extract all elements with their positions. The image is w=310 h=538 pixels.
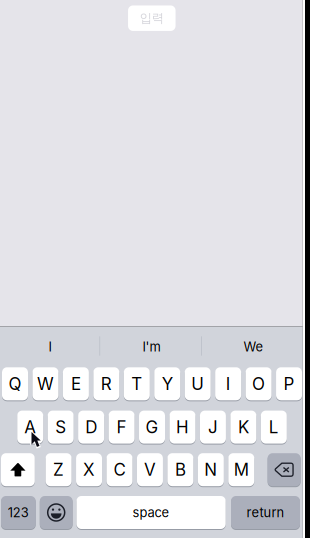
staticText: I [48,339,51,355]
staticText: T [131,374,142,394]
staticText: R [101,374,112,394]
button[interactable]: J [0,0,303,538]
button[interactable]: W [0,0,303,538]
button[interactable]: X [0,0,303,538]
staticText: H [176,417,189,437]
staticText: O [252,374,265,394]
button[interactable]: 123 [0,0,303,538]
button[interactable]: P [0,0,303,538]
staticText: A [24,417,36,437]
button[interactable]: Shift [0,0,303,538]
staticText: L [269,417,279,437]
button[interactable]: O [0,0,303,538]
staticText: 123 [8,505,29,520]
button[interactable]: U [0,0,303,538]
button[interactable]: N [0,0,303,538]
staticText: E [71,374,81,394]
button[interactable]: S [0,0,303,538]
staticText: J [208,417,218,437]
button[interactable]: C [0,0,303,538]
button[interactable]: M [0,0,303,538]
button[interactable]: Delete [0,0,303,538]
button[interactable]: E [0,0,303,538]
staticText: M [234,459,249,480]
staticText: U [191,374,204,394]
button[interactable]: K [0,0,303,538]
button[interactable]: Z [0,0,303,538]
staticText: V [144,459,156,480]
button[interactable]: We [0,0,303,538]
button[interactable]: Y [0,0,303,538]
button[interactable]: space [0,0,303,538]
button[interactable]: 입력 [0,0,303,538]
staticText: X [83,459,95,480]
staticText: I'm [142,339,160,355]
staticText: F [117,417,127,437]
button[interactable]: G [0,0,303,538]
staticText: Q [8,374,21,394]
staticText: We [244,339,264,355]
button[interactable]: I [0,0,303,538]
button[interactable]: F [0,0,303,538]
button[interactable]: Emoji [0,0,303,538]
button[interactable]: I [0,0,303,538]
staticText: W [37,374,54,394]
staticText: return [246,505,284,520]
staticText: Y [162,374,173,394]
button[interactable]: R [0,0,303,538]
staticText: N [204,459,217,480]
button[interactable]: V [0,0,303,538]
button[interactable]: B [0,0,303,538]
staticText: P [284,374,295,394]
staticText: B [175,459,186,480]
button[interactable]: D [0,0,303,538]
button[interactable]: Q [0,0,303,538]
staticText: 입력 [140,10,164,26]
button[interactable]: return [0,0,303,538]
button[interactable]: A [0,0,303,538]
staticText: C [113,459,125,480]
button[interactable]: T [0,0,303,538]
button[interactable]: L [0,0,303,538]
button[interactable]: I'm [0,0,303,538]
staticText: G [145,417,158,437]
button[interactable]: H [0,0,303,538]
staticText: Z [53,459,64,480]
staticText: space [133,505,170,520]
staticText: D [85,417,97,437]
staticText: K [238,417,249,437]
staticText: S [55,417,66,437]
staticText: I [226,374,231,394]
